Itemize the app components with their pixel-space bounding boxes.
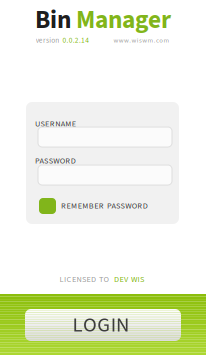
staticText: LICENSED TO (59, 274, 111, 285)
staticText: REMEMBER PASSWORD (61, 200, 150, 212)
staticText: version (36, 35, 60, 46)
staticText: www.wiswm.com (113, 36, 171, 45)
staticText: 0.0.2.14 (62, 35, 90, 46)
staticText: Manager (76, 2, 171, 38)
button[interactable]: REMEMBER PASSWORD (39, 198, 171, 214)
staticText: LOGIN (72, 310, 133, 340)
staticText: PASSWORD (35, 155, 78, 167)
staticText: DEV WIS (114, 274, 146, 285)
button[interactable]: LOGIN (25, 309, 181, 341)
staticText: Bin (35, 2, 71, 38)
staticText: USERNAME (35, 118, 78, 130)
